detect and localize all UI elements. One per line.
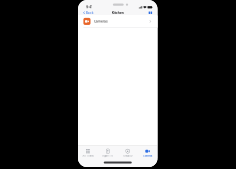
button[interactable]: All Items <box>78 146 98 159</box>
staticText: All Items <box>82 155 93 157</box>
button[interactable]: Security <box>118 146 138 159</box>
button[interactable]: Back <box>78 10 95 16</box>
staticText: Security <box>123 155 132 157</box>
staticText: 9:41 <box>86 6 92 9</box>
button[interactable]: Camera grid <box>147 10 158 15</box>
staticText: Cameras <box>94 19 108 23</box>
staticText: Apple TV <box>102 155 113 157</box>
staticText: Cameras <box>143 155 152 157</box>
button[interactable]: Apple TV <box>98 146 118 159</box>
staticText: Back <box>86 11 94 15</box>
staticText: Kitchen <box>112 11 124 15</box>
button[interactable]: Cameras <box>138 146 157 159</box>
button[interactable]: Cameras <box>78 15 157 27</box>
